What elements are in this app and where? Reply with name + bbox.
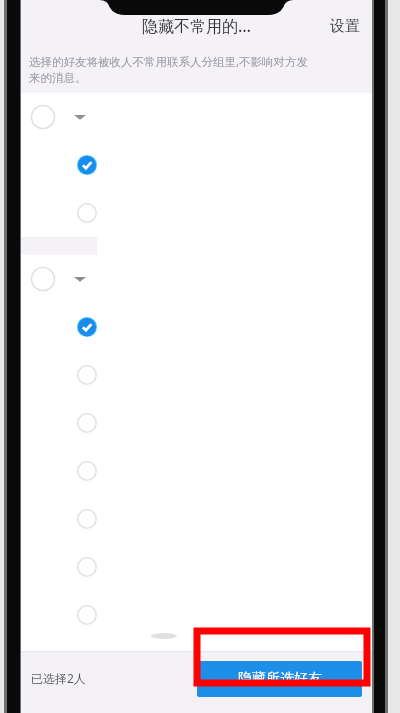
- staticText: 选择的好友将被收人不常用联系人分组里,不影响对方发 来的消息。: [29, 54, 309, 85]
- other: Selected: [77, 317, 97, 337]
- other: Not selected: [77, 413, 97, 433]
- other: Not selected: [77, 203, 97, 223]
- other: Not selected: [77, 557, 97, 577]
- staticText: 已选择2人: [31, 670, 86, 686]
- staticText: 隐藏所选好友: [238, 670, 322, 688]
- button[interactable]: Collapse group: [21, 255, 372, 303]
- other: Selected: [77, 155, 97, 175]
- button[interactable]: Selected: [21, 303, 372, 351]
- button[interactable]: Collapse group: [21, 93, 372, 141]
- button[interactable]: Selected: [21, 141, 372, 189]
- other: Not selected: [77, 365, 97, 385]
- staticText: 隐藏不常用的…: [142, 15, 251, 37]
- other: Collapse group: [74, 273, 86, 285]
- staticText: 设置: [330, 17, 360, 36]
- button[interactable]: Not selected: [21, 591, 372, 639]
- other: Not selected: [77, 461, 97, 481]
- other: Not selected: [77, 509, 97, 529]
- other: Not selected: [77, 605, 97, 625]
- button[interactable]: 设置: [318, 11, 372, 42]
- other: Collapse group: [74, 111, 86, 123]
- button[interactable]: 隐藏所选好友: [197, 661, 362, 697]
